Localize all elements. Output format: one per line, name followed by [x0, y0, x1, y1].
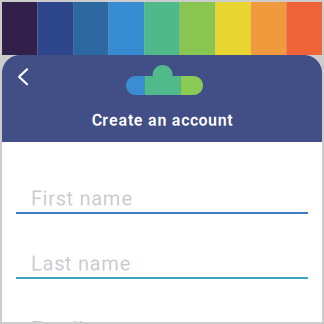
staticText: First name — [31, 187, 132, 210]
button[interactable]: Email — [16, 317, 308, 324]
button[interactable]: First name — [16, 187, 308, 214]
staticText: Email — [31, 317, 83, 324]
button[interactable]: Back — [6, 62, 40, 92]
staticText: Create an account — [92, 111, 232, 130]
staticText: Last name — [31, 252, 131, 275]
button[interactable]: Last name — [16, 252, 308, 279]
